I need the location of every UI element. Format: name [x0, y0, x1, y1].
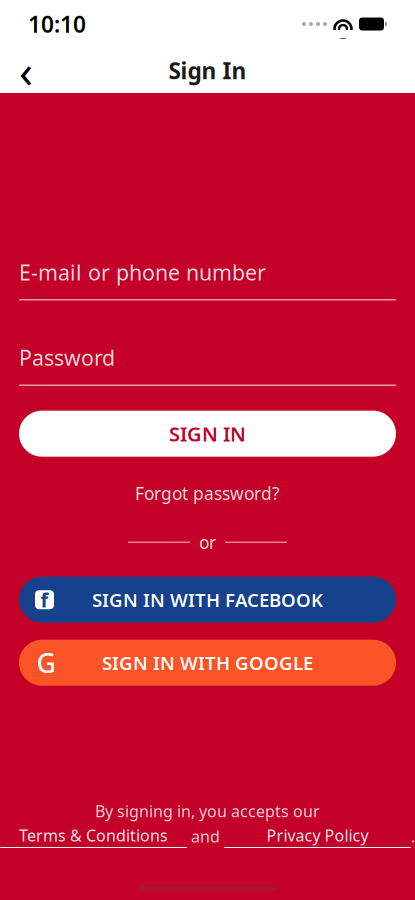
button[interactable]: SIGN IN [19, 411, 396, 457]
staticText: SIGN IN WITH GOOGLE [102, 650, 313, 675]
staticText: E-mail or phone number [19, 258, 266, 286]
staticText: ‹ [19, 40, 33, 101]
button[interactable]: SIGN IN WITH GOOGLE [19, 640, 396, 686]
button[interactable]: Back [4, 48, 48, 92]
staticText: SIGN IN WITH FACEBOOK [92, 587, 323, 612]
staticText: Password [19, 343, 115, 372]
staticText: By signing in, you accepts our [95, 800, 320, 822]
staticText: . [411, 826, 415, 847]
staticText: Forgot password? [135, 482, 280, 505]
button[interactable]: Forgot password? [125, 478, 290, 509]
staticText: and [187, 826, 224, 847]
staticText: G [36, 645, 55, 680]
button[interactable]: SIGN IN WITH FACEBOOK [19, 577, 396, 623]
staticText: f [40, 586, 48, 613]
staticText: Terms & Conditions [19, 825, 168, 846]
button[interactable]: Terms & Conditions [0, 825, 187, 848]
staticText: Privacy Policy [266, 825, 368, 846]
staticText: Sign In [168, 55, 246, 85]
staticText: or [199, 531, 216, 554]
staticText: SIGN IN [169, 420, 246, 447]
staticText: 10:10 [28, 9, 86, 39]
button[interactable]: Privacy Policy [224, 825, 411, 848]
